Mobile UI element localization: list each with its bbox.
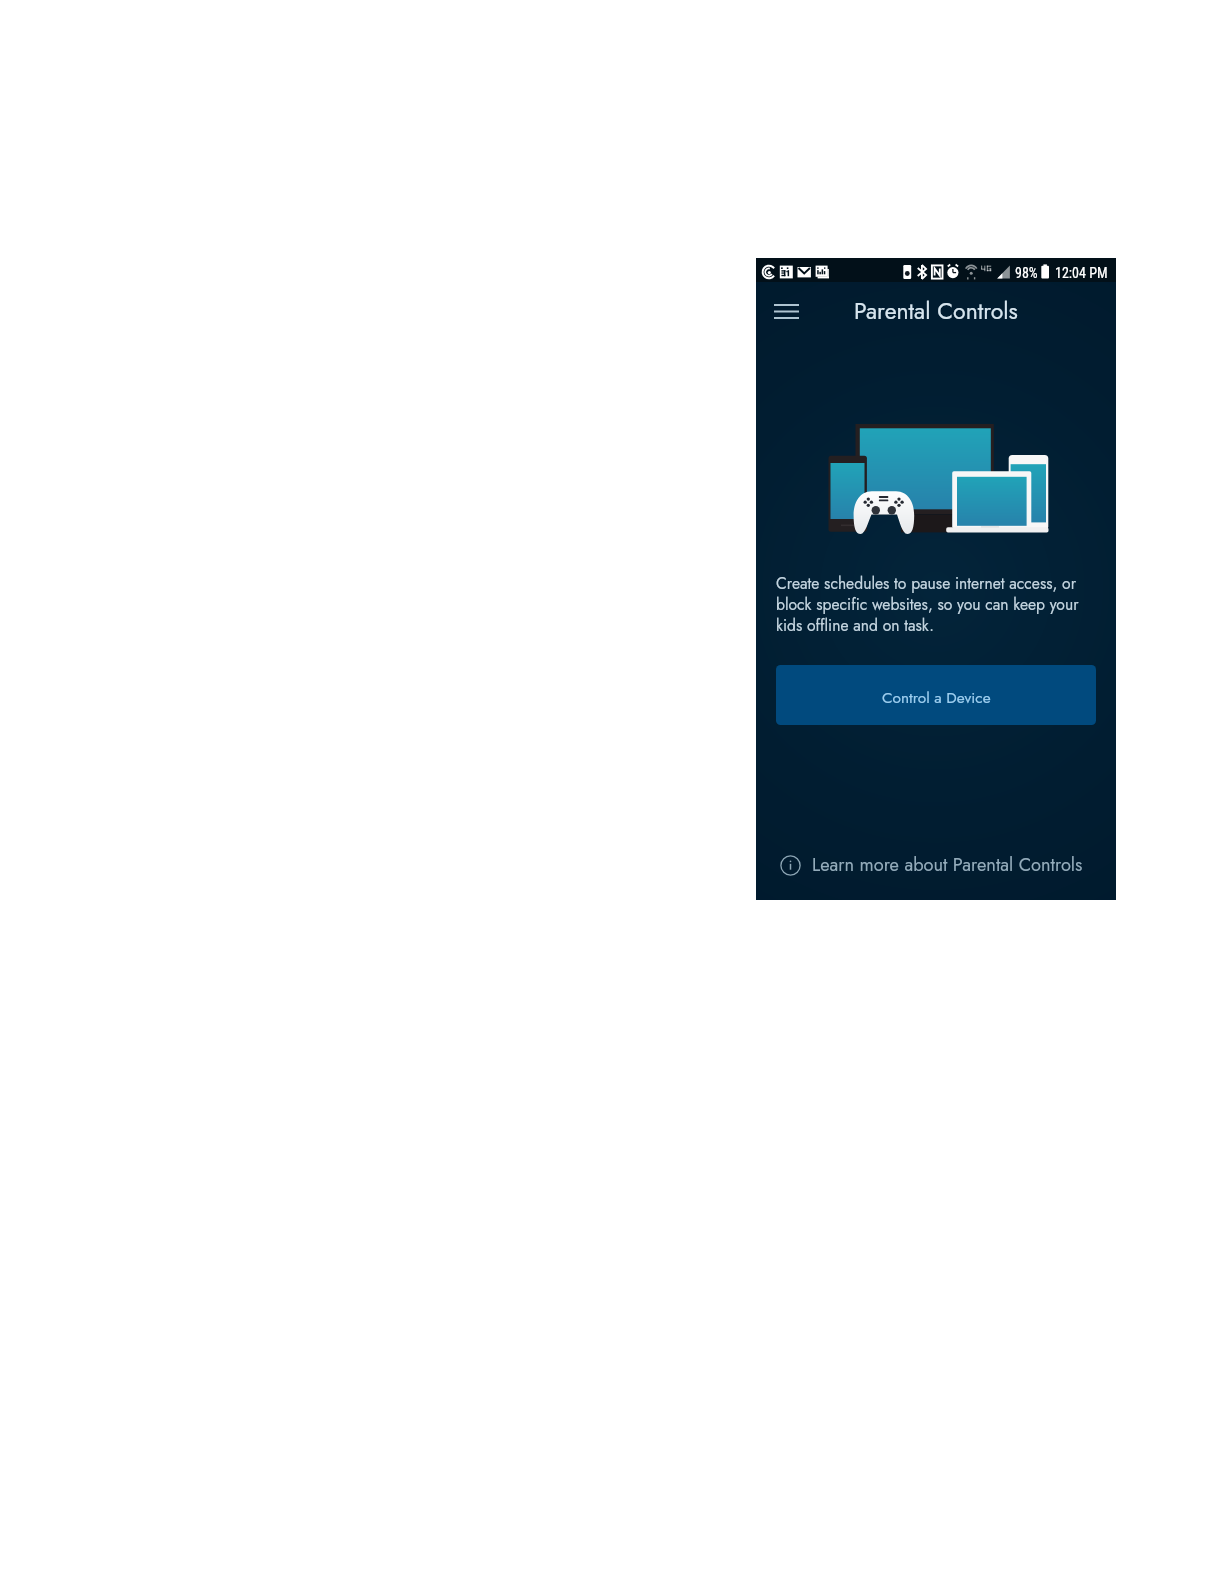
- button[interactable]: Control a Device: [776, 665, 1096, 725]
- staticText: Learn more about Parental Controls: [812, 852, 1083, 878]
- staticText: 12:04 PM: [1055, 265, 1108, 281]
- button[interactable]: Open navigation menu: [764, 289, 808, 333]
- staticText: 98%: [1015, 265, 1038, 281]
- button[interactable]: Learn more about Parental Controls: [756, 839, 1116, 891]
- staticText: Parental Controls: [854, 294, 1018, 327]
- staticText: Create schedules to pause internet acces…: [776, 572, 1102, 636]
- staticText: Control a Device: [882, 687, 991, 709]
